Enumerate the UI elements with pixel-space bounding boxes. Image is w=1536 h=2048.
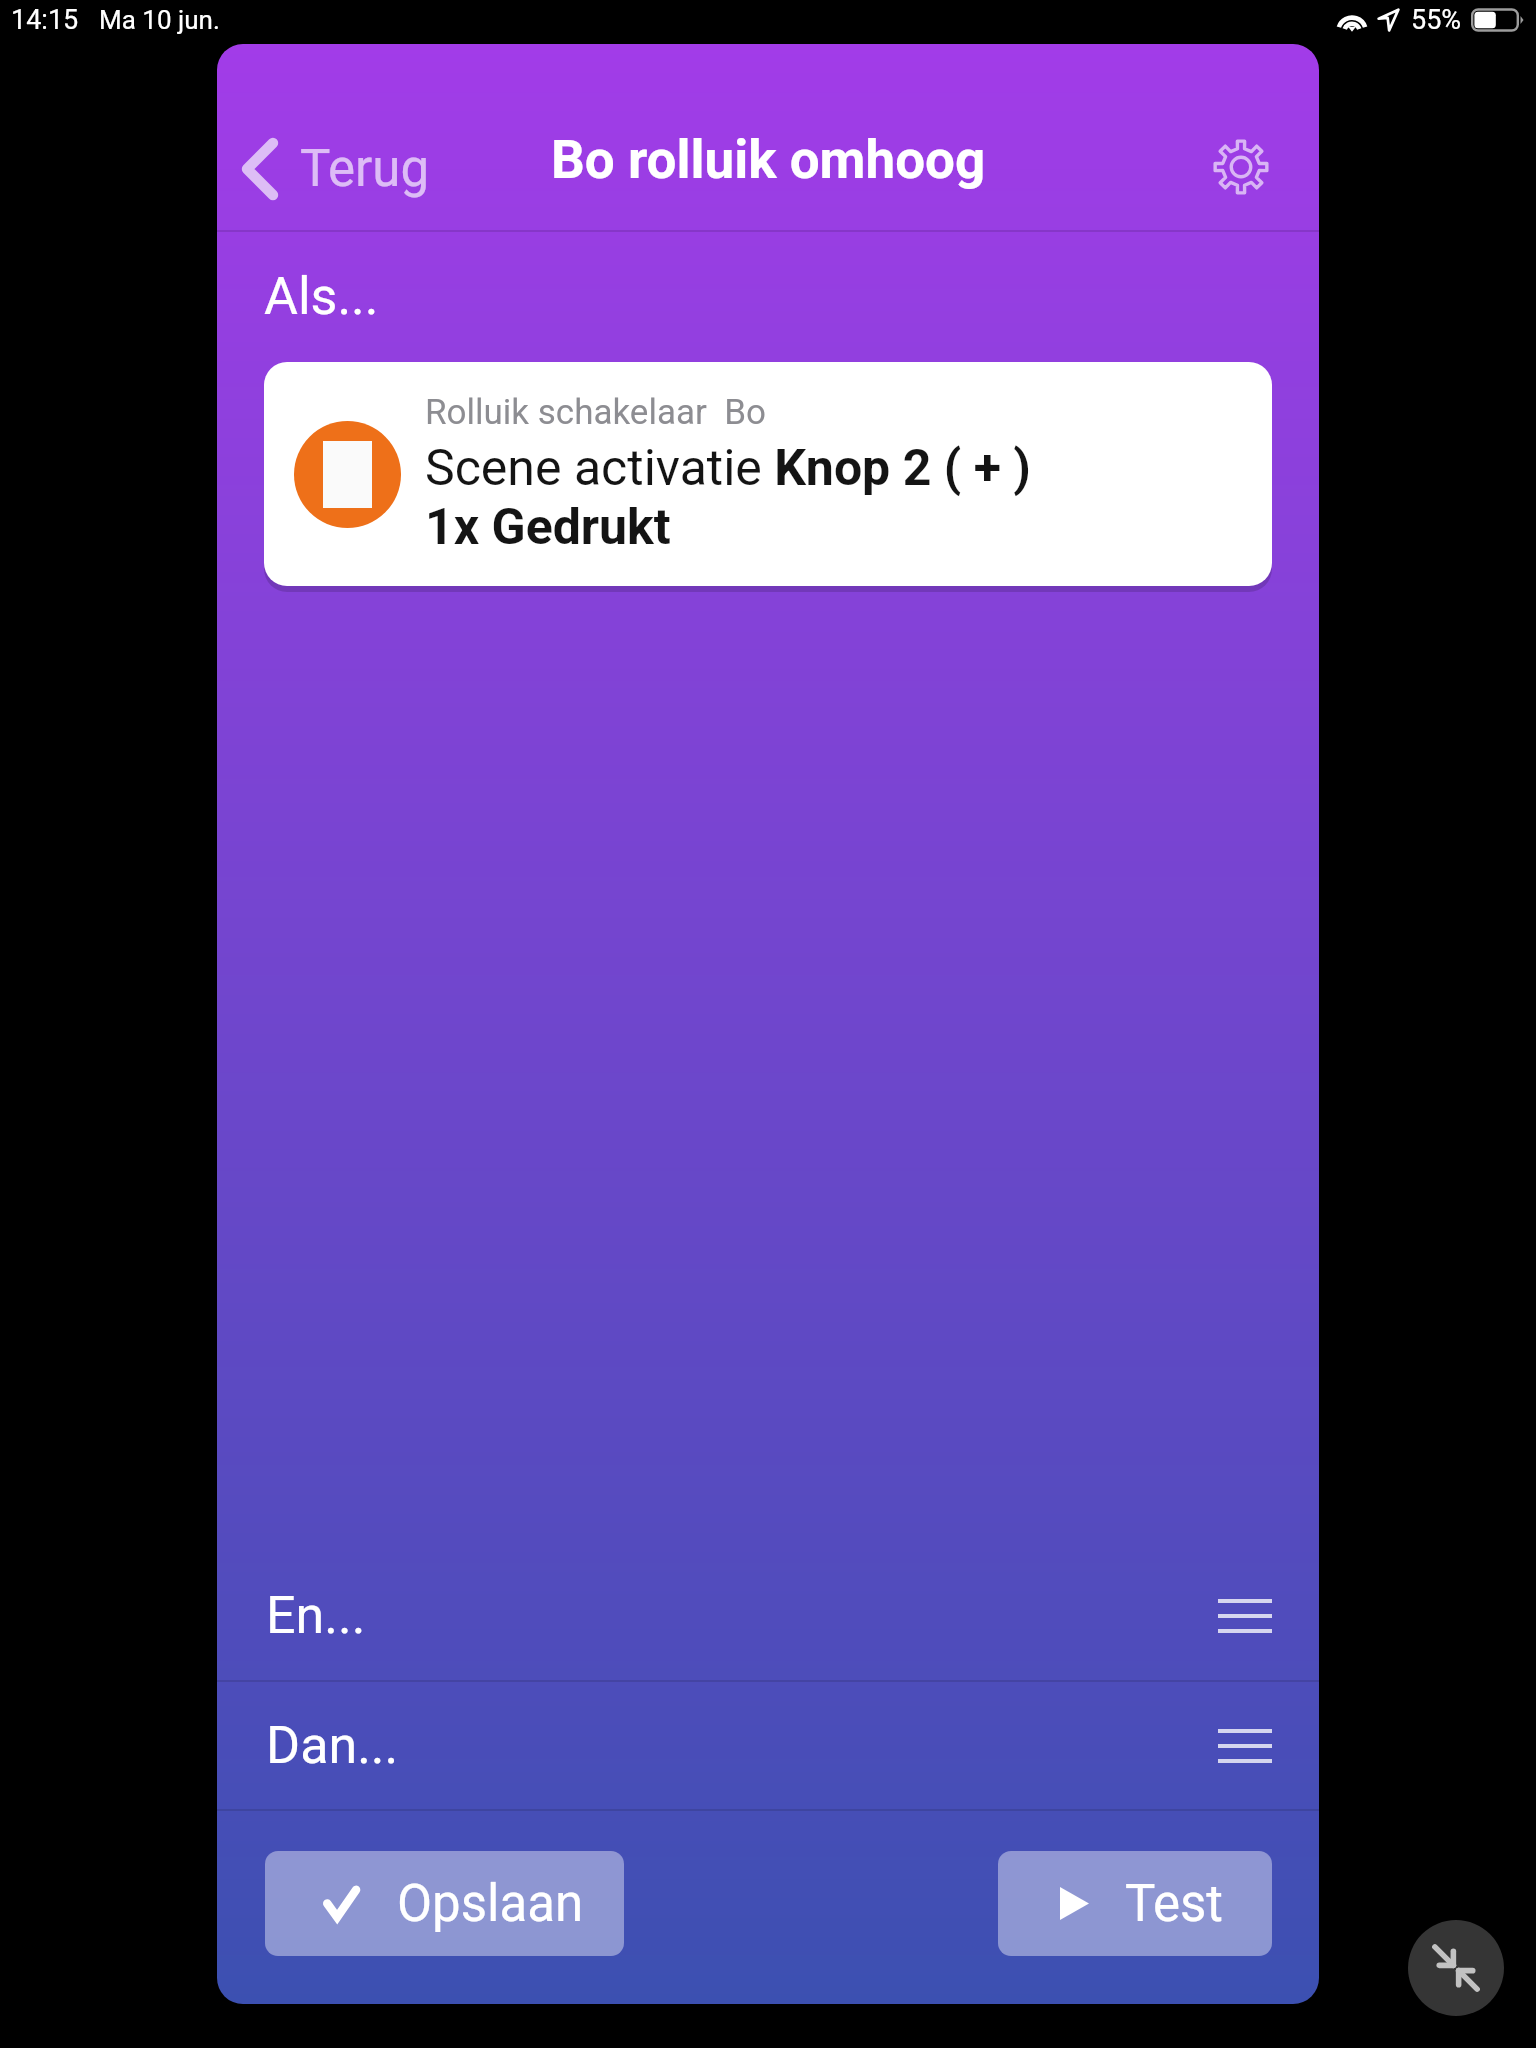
- staticText: 1x Gedrukt: [425, 498, 671, 557]
- button[interactable]: Terug: [232, 126, 440, 212]
- button[interactable]: Test: [998, 1851, 1272, 1956]
- staticText: 55%: [1411, 4, 1462, 36]
- staticText: Dan...: [266, 1715, 399, 1776]
- button[interactable]: Collapse: [1408, 1920, 1504, 2016]
- staticText: Scene activatie Knop 2 ( + ): [425, 439, 1031, 498]
- staticText: Bo rolluik omhoog: [551, 129, 986, 191]
- staticText: Rolluik schakelaar Bo: [425, 392, 767, 433]
- button[interactable]: Rolluik schakelaar Bo: [264, 362, 1272, 586]
- staticText: 14:15: [11, 4, 79, 36]
- button[interactable]: Opslaan: [265, 1851, 624, 1956]
- button[interactable]: Dan...: [217, 1681, 1319, 1810]
- staticText: En...: [266, 1585, 366, 1646]
- button[interactable]: En...: [217, 1551, 1319, 1680]
- staticText: Terug: [300, 139, 430, 199]
- staticText: Test: [1125, 1874, 1224, 1934]
- staticText: Ma 10 jun.: [99, 5, 220, 35]
- button[interactable]: Settings: [1210, 136, 1272, 198]
- staticText: Opslaan: [397, 1874, 584, 1934]
- staticText: Als...: [264, 266, 379, 327]
